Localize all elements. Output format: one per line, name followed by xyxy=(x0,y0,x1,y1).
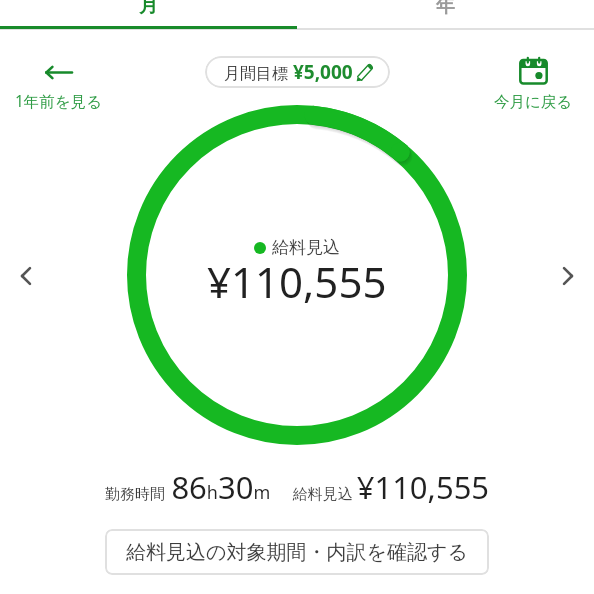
staticText: 月間目標 ¥5,000 xyxy=(224,59,353,85)
staticText: 給料見込の対象期間・内訳を確認する xyxy=(126,540,468,565)
button[interactable]: 1年前を見る xyxy=(2,66,116,111)
button[interactable]: 次の期間 xyxy=(546,254,590,298)
button[interactable]: 年 xyxy=(297,0,594,30)
staticText: 年 xyxy=(436,0,455,18)
staticText: 勤務時間 86h30m 給料見込 ¥110,555 xyxy=(105,466,490,508)
button[interactable]: 給料見込の対象期間・内訳を確認する xyxy=(105,529,489,575)
button[interactable]: 今月に戻る xyxy=(481,55,586,112)
staticText: ¥110,555 xyxy=(207,253,387,310)
staticText: 今月に戻る xyxy=(494,92,573,112)
button[interactable]: 月 xyxy=(0,0,297,30)
staticText: 月 xyxy=(139,0,158,18)
staticText: 1年前を見る xyxy=(15,90,103,111)
staticText: 給料見込 xyxy=(272,237,340,258)
button[interactable]: 月間目標 ¥5,000 xyxy=(205,56,390,88)
button[interactable]: 前の期間 xyxy=(4,254,48,298)
